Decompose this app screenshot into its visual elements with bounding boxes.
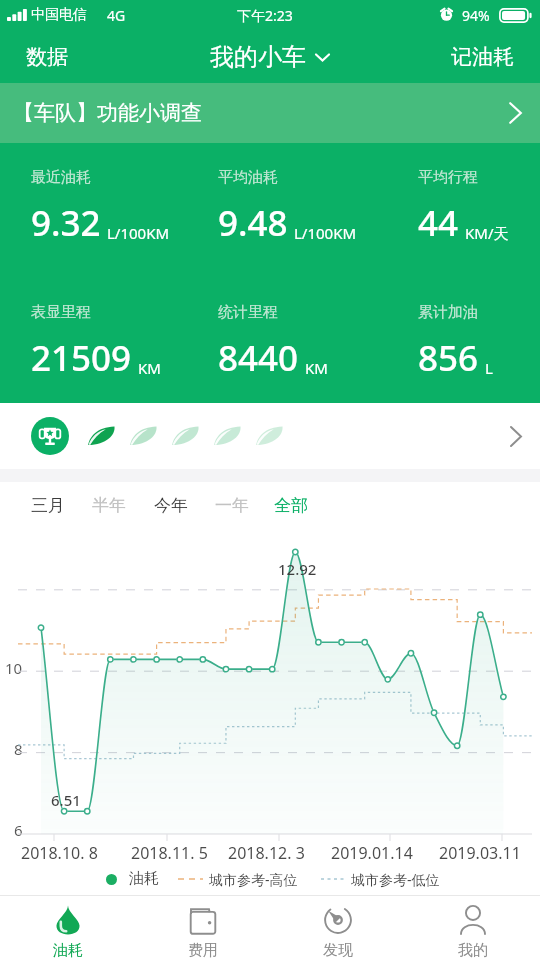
staticText: 统计里程 <box>218 303 278 322</box>
button[interactable]: 我的 <box>405 895 540 960</box>
staticText: 中国电信 <box>31 6 87 24</box>
staticText: 856 <box>418 334 479 382</box>
staticText: 9.48 <box>218 199 288 247</box>
staticText: 4G <box>107 6 126 25</box>
staticText: L <box>485 358 493 378</box>
staticText: 油耗 <box>129 869 159 888</box>
button[interactable]: 发现 <box>270 895 405 960</box>
button[interactable]: 半年 <box>84 482 540 528</box>
button[interactable]: 费用 <box>135 895 270 960</box>
staticText: 全部 <box>274 495 308 516</box>
staticText: 【车队】功能小调查 <box>13 100 202 126</box>
staticText: 2018.10. 8 <box>21 842 98 864</box>
staticText: KM <box>138 358 161 378</box>
staticText: 半年 <box>92 495 126 516</box>
staticText: 表显里程 <box>31 303 91 322</box>
button[interactable]: 记油耗 <box>439 36 526 78</box>
button[interactable]: 今年 <box>146 482 540 528</box>
staticText: 12.92 <box>278 559 317 579</box>
staticText: KM/天 <box>465 223 509 243</box>
staticText: 发现 <box>323 941 353 960</box>
staticText: KM <box>305 358 328 378</box>
staticText: 一年 <box>215 495 249 516</box>
staticText: 6 <box>14 820 23 840</box>
staticText: 44 <box>418 199 459 247</box>
staticText: 平均行程 <box>418 168 478 187</box>
button[interactable]: 数据 <box>14 36 80 78</box>
button[interactable]: 一年 <box>207 482 540 528</box>
staticText: 三月 <box>31 495 65 516</box>
staticText: 8 <box>14 739 23 759</box>
staticText: 10 <box>5 658 23 678</box>
other: More achievements <box>510 426 522 447</box>
staticText: 记油耗 <box>451 44 514 70</box>
staticText: 平均油耗 <box>218 168 278 187</box>
staticText: 费用 <box>188 941 218 960</box>
staticText: 8440 <box>218 334 299 382</box>
staticText: 9.32 <box>31 199 101 247</box>
button[interactable]: 三月 <box>23 482 540 528</box>
staticText: 我的 <box>458 941 488 960</box>
button[interactable]: 油耗 <box>0 895 135 960</box>
staticText: 今年 <box>154 495 188 516</box>
staticText: 城市参考-高位 <box>209 870 298 889</box>
staticText: 最近油耗 <box>31 168 91 187</box>
staticText: L/100KM <box>107 223 170 243</box>
staticText: 我的小车 <box>210 42 306 72</box>
staticText: 下午2:23 <box>237 6 293 25</box>
staticText: 2019.03.11 <box>439 842 521 864</box>
staticText: L/100KM <box>294 223 357 243</box>
button[interactable]: 【车队】功能小调查 <box>0 83 540 143</box>
staticText: 2018.12. 3 <box>228 842 305 864</box>
staticText: 6.51 <box>51 790 81 810</box>
staticText: 2019.01.14 <box>331 842 413 864</box>
button[interactable]: 全部 <box>266 482 540 528</box>
staticText: 21509 <box>31 334 132 382</box>
staticText: 油耗 <box>53 941 83 960</box>
staticText: 数据 <box>26 44 68 70</box>
button[interactable]: 我的小车 <box>200 36 340 78</box>
staticText: 城市参考-低位 <box>351 870 440 889</box>
staticText: 94% <box>462 6 490 25</box>
button[interactable]: More achievements <box>0 403 540 469</box>
staticText: 2018.11. 5 <box>131 842 208 864</box>
staticText: 累计加油 <box>418 303 478 322</box>
